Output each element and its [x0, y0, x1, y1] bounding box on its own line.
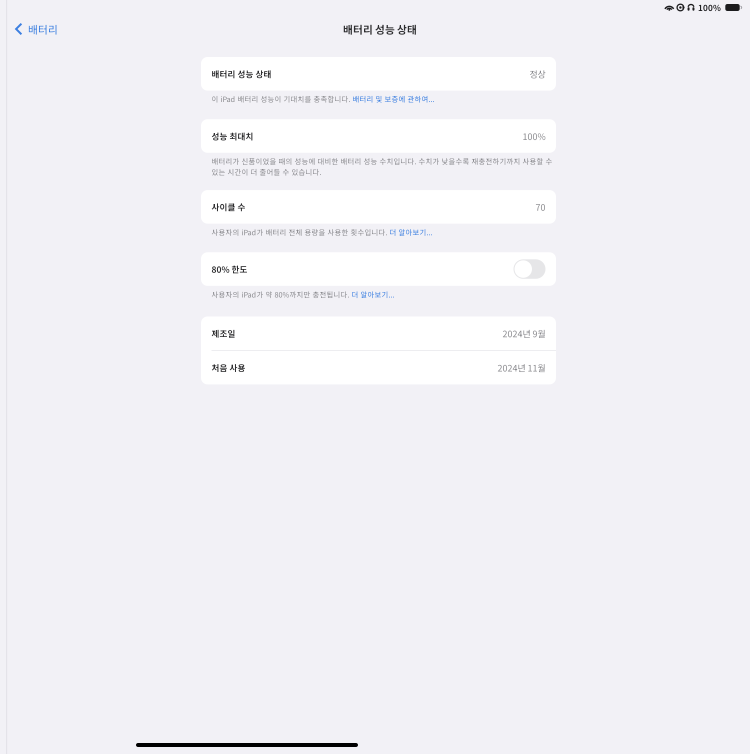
staticText: 2024년 11월	[497, 361, 545, 374]
staticText: 배터리 성능 상태	[211, 68, 271, 80]
staticText: 사용자의 iPad가 약 80%까지만 충전됩니다.	[211, 289, 351, 299]
staticText: 100%	[522, 129, 545, 142]
button[interactable]: 80% 한도	[201, 252, 556, 286]
staticText: 70	[535, 200, 545, 213]
staticText: 배터리가 신품이었을 때의 성능에 대비한 배터리 성능 수치입니다. 수치가 …	[211, 156, 552, 177]
staticText: 더 알아보기...	[351, 289, 394, 299]
button[interactable]: 성능 최대치	[201, 119, 556, 153]
staticText: 제조일	[211, 327, 235, 339]
button[interactable]: 사이클 수	[201, 190, 556, 224]
staticText: 사이클 수	[211, 201, 245, 213]
staticText: 80% 한도	[211, 263, 247, 275]
button[interactable]: 배터리 성능 상태	[201, 57, 556, 91]
staticText: 처음 사용	[211, 361, 245, 374]
staticText: 2024년 9월	[502, 327, 545, 340]
staticText: 배터리	[28, 21, 58, 37]
staticText: 성능 최대치	[211, 130, 253, 142]
staticText: 100%	[698, 1, 721, 13]
button[interactable]: 제조일	[201, 316, 556, 350]
staticText: 배터리 성능 상태	[343, 21, 417, 37]
staticText: 더 알아보기...	[389, 227, 432, 237]
staticText: 사용자의 iPad가 배터리 전체 용량을 사용한 횟수입니다.	[211, 227, 389, 237]
staticText: 배터리 및 보증에 관하여...	[352, 94, 434, 104]
button[interactable]: 배터리	[0, 21, 58, 37]
button[interactable]: 처음 사용	[201, 351, 556, 384]
staticText: 정상	[529, 67, 545, 80]
staticText: 이 iPad 배터리 성능이 기대치를 충족합니다.	[211, 94, 352, 104]
